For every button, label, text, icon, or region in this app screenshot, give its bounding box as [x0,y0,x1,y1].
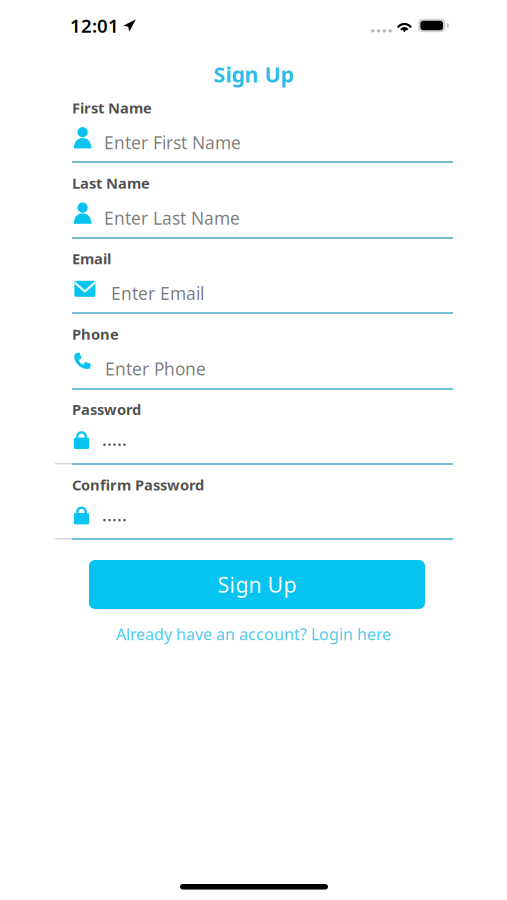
staticText: Sign Up [213,60,293,88]
staticText: Confirm Password [72,475,204,494]
button[interactable]: First Name [72,87,453,162]
staticText: Sign Up [217,570,296,599]
button[interactable]: Confirm Password [72,464,453,539]
staticText: Phone [72,324,119,344]
staticText: Already have an account? Login here [116,623,391,645]
button[interactable]: Phone [72,313,453,389]
button[interactable]: Email [72,238,453,313]
staticText: First Name [72,98,152,117]
staticText: 12:01 [70,13,119,38]
staticText: Enter Last Name [104,206,240,229]
button[interactable]: Last Name [72,162,453,238]
button[interactable]: Sign Up [89,560,425,609]
staticText: Password [72,400,141,419]
staticText: Enter Phone [105,357,206,380]
staticText: Last Name [72,173,150,193]
button[interactable]: Password [72,389,453,464]
staticText: Email [72,249,111,268]
staticText: Enter First Name [104,131,241,154]
staticText: Enter Email [111,282,204,305]
button[interactable]: Already have an account? Login here [0,624,507,644]
